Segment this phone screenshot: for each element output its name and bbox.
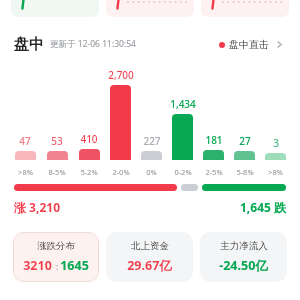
staticText: 1,645 跌 [240, 199, 286, 215]
staticText: 27 [239, 134, 251, 148]
staticText: 410 [80, 132, 98, 146]
button[interactable]: 27 [229, 62, 260, 177]
staticText: 5-8% [236, 167, 254, 177]
staticText: 主力净流入 [220, 240, 268, 252]
staticText: 北上资金 [131, 240, 169, 252]
button[interactable]: 涨跌分布 [13, 232, 99, 282]
button[interactable]: 盘中直击 [217, 36, 286, 53]
staticText: 5-2% [80, 167, 98, 177]
staticText: 2-5% [205, 167, 223, 177]
staticText: 3 [273, 136, 279, 150]
staticText: 181 [205, 133, 223, 147]
staticText: 更新于 12-06 11:30:54 [50, 38, 136, 50]
staticText: 1,434 [170, 97, 196, 111]
staticText: 0-2% [174, 167, 192, 177]
staticText: 29.67亿 [127, 257, 172, 274]
staticText: 2,700 [108, 68, 134, 82]
button[interactable]: 410 [73, 62, 105, 177]
staticText: 涨 3,210 [14, 199, 60, 215]
button[interactable]: 47 [9, 62, 41, 177]
button[interactable]: 主力净流入 [200, 232, 287, 282]
staticText: 0% [146, 167, 157, 177]
staticText: 盘中直击 [229, 38, 269, 51]
staticText: 1645 [60, 257, 89, 274]
staticText: 3210 [23, 257, 52, 274]
staticText: 8-5% [48, 167, 66, 177]
button[interactable]: 227 [136, 62, 167, 177]
button[interactable]: 北上资金 [106, 232, 193, 282]
button[interactable]: 1,434 [167, 62, 198, 177]
staticText: -24.50亿 [219, 257, 268, 274]
button[interactable]: Index card 1 [11, 0, 99, 17]
staticText: 53 [51, 134, 63, 148]
staticText: 盘中 [14, 35, 44, 54]
staticText: 涨跌分布 [37, 240, 75, 252]
button[interactable]: 53 [41, 62, 73, 177]
staticText: 2-0% [112, 167, 130, 177]
button[interactable]: 3 [260, 62, 291, 177]
staticText: >8% [268, 167, 283, 177]
button[interactable]: Index card 3 [201, 0, 289, 17]
staticText: 227 [143, 134, 161, 148]
staticText: >8% [18, 167, 33, 177]
staticText: : [52, 260, 60, 272]
button[interactable]: 181 [198, 62, 229, 177]
button[interactable]: 2,700 [105, 62, 136, 177]
button[interactable]: Index card 2 [106, 0, 194, 17]
staticText: 47 [19, 134, 31, 148]
